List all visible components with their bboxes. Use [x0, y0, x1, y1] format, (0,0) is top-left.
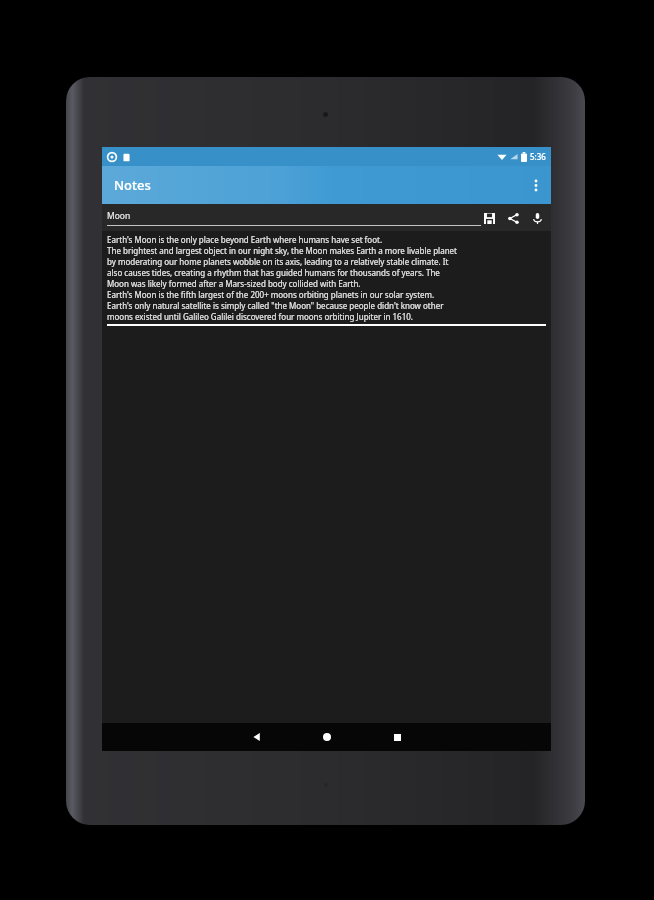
staticText: 5:36 [530, 151, 546, 162]
staticText: Moon [107, 210, 131, 222]
staticText: by moderating our home planets wobble on… [107, 256, 546, 267]
button[interactable]: Earth's Moon is the only place beyond Ea… [107, 234, 546, 326]
button[interactable]: Share [504, 209, 522, 227]
staticText: Notes [114, 176, 151, 194]
button[interactable]: More options [521, 166, 551, 204]
staticText: also causes tides, creating a rhythm tha… [107, 267, 546, 278]
button[interactable]: Home [305, 723, 349, 751]
button[interactable]: Save [480, 209, 498, 227]
staticText: Earth's Moon is the only place beyond Ea… [107, 234, 546, 245]
button[interactable]: Back [235, 723, 279, 751]
button[interactable]: Voice input [528, 209, 546, 227]
button[interactable]: Moon [107, 210, 481, 226]
staticText: moons existed until Galileo Galilei disc… [107, 311, 546, 322]
staticText: Moon was likely formed after a Mars-size… [107, 278, 546, 289]
staticText: Earth's Moon is the fifth largest of the… [107, 289, 546, 300]
staticText: The brightest and largest object in our … [107, 245, 546, 256]
button[interactable]: Recent apps [375, 723, 419, 751]
staticText: Earth's only natural satellite is simply… [107, 300, 546, 311]
